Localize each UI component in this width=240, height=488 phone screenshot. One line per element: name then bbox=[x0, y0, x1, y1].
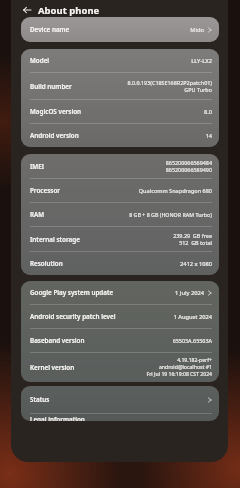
staticText: 65503A.65503A bbox=[172, 337, 212, 344]
button[interactable]: Resolution bbox=[21, 252, 219, 275]
staticText: Resolution bbox=[30, 259, 63, 268]
button[interactable]: Kernel version bbox=[21, 353, 219, 382]
staticText: 14 bbox=[205, 132, 212, 140]
staticText: About phone bbox=[38, 4, 100, 17]
staticText: 239.29 GB free bbox=[173, 232, 212, 239]
button[interactable]: Android security patch level bbox=[21, 305, 219, 328]
staticText: Model bbox=[30, 56, 50, 65]
staticText: Qualcomm Snapdragon 680 bbox=[138, 187, 212, 194]
staticText: Fri Jul 19 16:19:08 CST 2024 bbox=[146, 371, 212, 378]
staticText: android@localhost #1 bbox=[158, 364, 212, 371]
button[interactable]: MagicOS version bbox=[21, 100, 219, 123]
staticText: 865200066569484 bbox=[165, 159, 212, 166]
staticText: MagicOS version bbox=[30, 107, 82, 116]
staticText: Kernel version bbox=[30, 363, 75, 372]
staticText: GPU Turbo bbox=[184, 86, 212, 93]
staticText: Mido bbox=[190, 26, 204, 34]
staticText: Android version bbox=[30, 131, 79, 140]
staticText: 8.0 bbox=[203, 108, 212, 116]
staticText: 1 July 2024 bbox=[175, 289, 204, 297]
button[interactable]: Google Play system update bbox=[21, 281, 219, 304]
button[interactable]: Android version bbox=[21, 124, 219, 147]
staticText: 2412 x 1080 bbox=[179, 260, 212, 268]
button[interactable]: IMEI bbox=[21, 154, 219, 178]
staticText: 8 GB + 8 GB (HONOR RAM Turbo) bbox=[129, 211, 212, 218]
staticText: Device name bbox=[30, 25, 70, 34]
button[interactable]: Model bbox=[21, 49, 219, 72]
staticText: Processor bbox=[30, 186, 61, 195]
staticText: Google Play system update bbox=[30, 288, 114, 297]
button[interactable]: Internal storage bbox=[21, 227, 219, 251]
button[interactable]: Device name bbox=[21, 17, 219, 42]
staticText: 865200066589490 bbox=[165, 166, 212, 173]
staticText: Build number bbox=[30, 82, 72, 91]
staticText: Legal information bbox=[30, 415, 85, 421]
staticText: Android security patch level bbox=[30, 312, 116, 321]
button[interactable]: Back bbox=[20, 3, 33, 16]
staticText: Status bbox=[30, 395, 50, 404]
button[interactable]: Build number bbox=[21, 73, 219, 99]
staticText: Internal storage bbox=[30, 235, 80, 244]
staticText: 8.0.0.193(C18SE168R2P2patch01) bbox=[127, 79, 212, 86]
button[interactable]: Status bbox=[21, 386, 219, 413]
button[interactable]: Baseband version bbox=[21, 329, 219, 352]
staticText: 4.19.182-perf+ bbox=[177, 357, 212, 364]
staticText: 512 GB total bbox=[179, 239, 212, 246]
staticText: 1 August 2024 bbox=[173, 313, 212, 321]
staticText: RAM bbox=[30, 210, 45, 219]
button[interactable]: RAM bbox=[21, 203, 219, 226]
button[interactable]: Processor bbox=[21, 179, 219, 202]
staticText: LLY-LX2 bbox=[191, 57, 212, 65]
staticText: IMEI bbox=[30, 162, 45, 171]
staticText: Baseband version bbox=[30, 336, 85, 345]
